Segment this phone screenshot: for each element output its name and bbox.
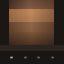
- button[interactable]: Profile: [51, 55, 54, 60]
- button[interactable]: Home: [10, 55, 13, 60]
- button[interactable]: Library: [37, 55, 40, 60]
- button[interactable]: [9, 32, 54, 45]
- button[interactable]: Search: [24, 55, 27, 60]
- button[interactable]: [9, 0, 54, 32]
